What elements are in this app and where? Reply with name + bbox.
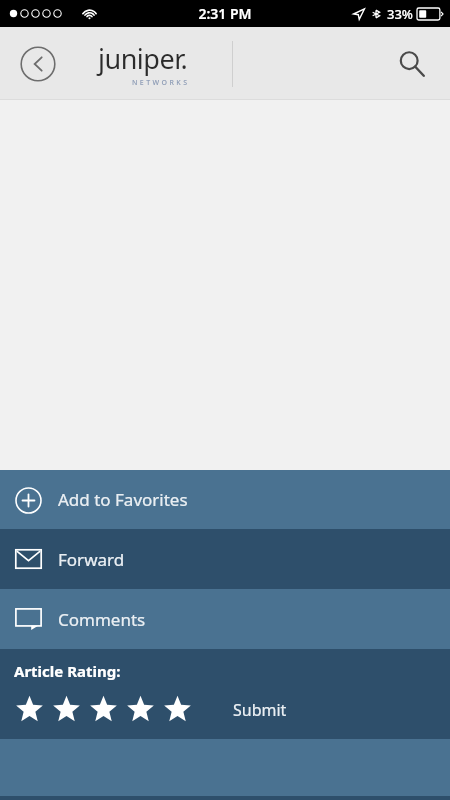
button[interactable]: Submit [229,695,291,725]
staticText: 2:31 PM [198,4,252,23]
staticText: Forward [58,548,125,571]
staticText: N E T W O R K S [132,78,188,88]
button[interactable]: Rate 3 stars [88,694,119,725]
staticText: Article Rating: [14,661,121,681]
staticText: Add to Favorites [58,488,188,511]
staticText: Submit [233,699,287,721]
button[interactable]: Add to Favorites [0,470,450,529]
button[interactable]: Rate 1 stars [14,694,45,725]
staticText: juniper. [98,40,188,77]
button[interactable]: Forward [0,529,450,589]
button[interactable]: Search [392,44,432,84]
button[interactable]: Rate 2 stars [51,694,82,725]
button[interactable]: Back [20,46,56,82]
staticText: 33% [387,5,413,23]
button[interactable]: Comments [0,589,450,649]
button[interactable]: Rate 5 stars [162,694,193,725]
staticText: Comments [58,608,146,631]
button[interactable]: Rate 4 stars [125,694,156,725]
